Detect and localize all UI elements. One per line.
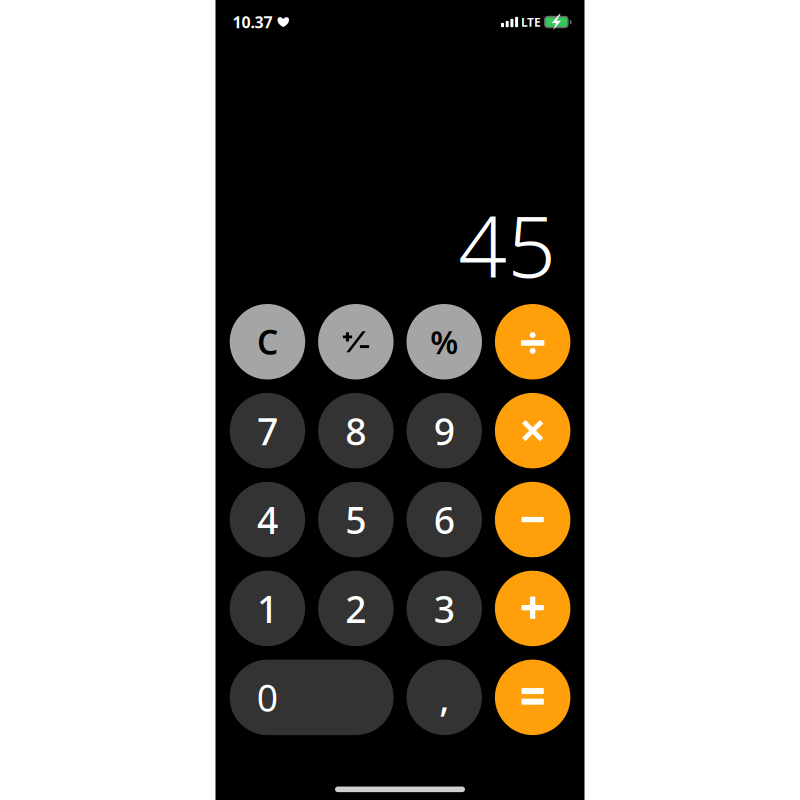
button[interactable]: Add	[495, 571, 570, 646]
staticText: 4	[257, 495, 278, 544]
button[interactable]: ,	[406, 660, 482, 735]
button[interactable]: 3	[406, 571, 482, 646]
staticText: ,	[439, 673, 449, 722]
staticText: 2	[345, 584, 366, 633]
button[interactable]: Subtract	[495, 482, 570, 557]
staticText: 10.37	[232, 11, 272, 33]
staticText: %	[430, 320, 458, 363]
staticText: 5	[345, 495, 366, 544]
button[interactable]: Divide	[495, 304, 570, 379]
staticText: 7	[257, 406, 278, 455]
button[interactable]: 9	[406, 393, 482, 468]
staticText: 3	[434, 584, 455, 633]
button[interactable]: 2	[318, 571, 394, 646]
button[interactable]: Equals	[495, 660, 570, 735]
button[interactable]: 0	[230, 660, 394, 735]
staticText: C	[257, 320, 278, 364]
button[interactable]: Multiply	[495, 393, 570, 468]
button[interactable]: 8	[318, 393, 394, 468]
staticText: 9	[434, 406, 455, 455]
button[interactable]: C	[230, 304, 305, 379]
button[interactable]: 1	[230, 571, 305, 646]
button[interactable]: 5	[318, 482, 394, 557]
staticText: 0	[257, 673, 278, 722]
staticText: 1	[257, 584, 278, 633]
button[interactable]: 7	[230, 393, 305, 468]
button[interactable]: %	[406, 304, 482, 379]
button[interactable]: 4	[230, 482, 305, 557]
button[interactable]: 6	[406, 482, 482, 557]
button[interactable]: Plus or minus	[318, 304, 394, 379]
staticText: 8	[345, 406, 366, 455]
staticText: 6	[434, 495, 455, 544]
staticText: 45	[458, 188, 556, 301]
staticText: LTE	[521, 14, 541, 30]
